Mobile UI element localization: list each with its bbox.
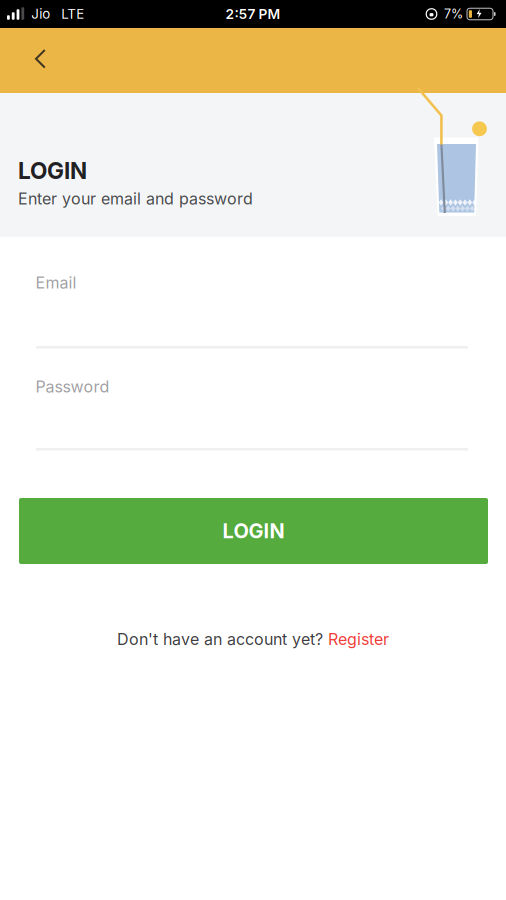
staticText: LOGIN: [18, 157, 87, 184]
staticText: Email: [35, 273, 76, 292]
textField[interactable]: Email: [35, 273, 468, 292]
staticText: LTE: [61, 6, 84, 22]
staticText: Password: [35, 377, 109, 396]
staticText: Register: [328, 629, 389, 649]
staticText: Jio: [31, 6, 50, 22]
staticText: Enter your email and password: [18, 189, 253, 208]
button[interactable]: Register: [328, 629, 389, 649]
staticText: 7%: [444, 6, 463, 22]
button[interactable]: LOGIN: [0, 498, 506, 564]
staticText: Email: [35, 273, 76, 292]
staticText: LOGIN: [222, 519, 284, 543]
staticText: Don't have an account yet?: [117, 629, 328, 649]
button[interactable]: Back: [0, 30, 75, 90]
staticText: Password: [35, 377, 109, 396]
textField[interactable]: Password: [35, 377, 468, 396]
staticText: 2:57 PM: [225, 6, 280, 22]
